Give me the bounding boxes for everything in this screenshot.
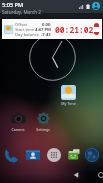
staticText: My Time xyxy=(61,101,76,106)
button[interactable]: Stop timer xyxy=(94,23,99,35)
button[interactable]: Camera xyxy=(5,111,31,132)
button[interactable]: Messaging xyxy=(66,147,82,163)
button[interactable]: Offset xyxy=(2,19,102,39)
staticText: Offset xyxy=(15,22,28,27)
staticText: 4:47 PM xyxy=(35,27,51,32)
staticText: 00:21:02 xyxy=(55,24,94,35)
staticText: 5:05 PM xyxy=(2,1,24,9)
button[interactable]: Browser xyxy=(84,147,100,163)
staticText: Start time xyxy=(15,27,35,32)
button[interactable]: Back xyxy=(24,167,103,183)
staticText: -7.43 xyxy=(41,32,51,37)
button[interactable]: My Time xyxy=(55,85,81,106)
staticText: 0.00 xyxy=(42,22,51,27)
staticText: Camera xyxy=(11,127,25,132)
button[interactable]: Apps xyxy=(46,147,62,163)
button[interactable]: Home xyxy=(49,167,103,183)
staticText: Saturday, March 2 xyxy=(2,9,41,15)
staticText: Day balance xyxy=(15,32,39,37)
button[interactable]: Contacts xyxy=(25,147,41,163)
button[interactable]: Settings xyxy=(30,111,56,132)
button[interactable]: Recents xyxy=(75,167,103,183)
staticText: Settings xyxy=(36,127,50,132)
button[interactable]: Account xyxy=(92,2,100,10)
button[interactable]: Phone xyxy=(3,147,19,163)
